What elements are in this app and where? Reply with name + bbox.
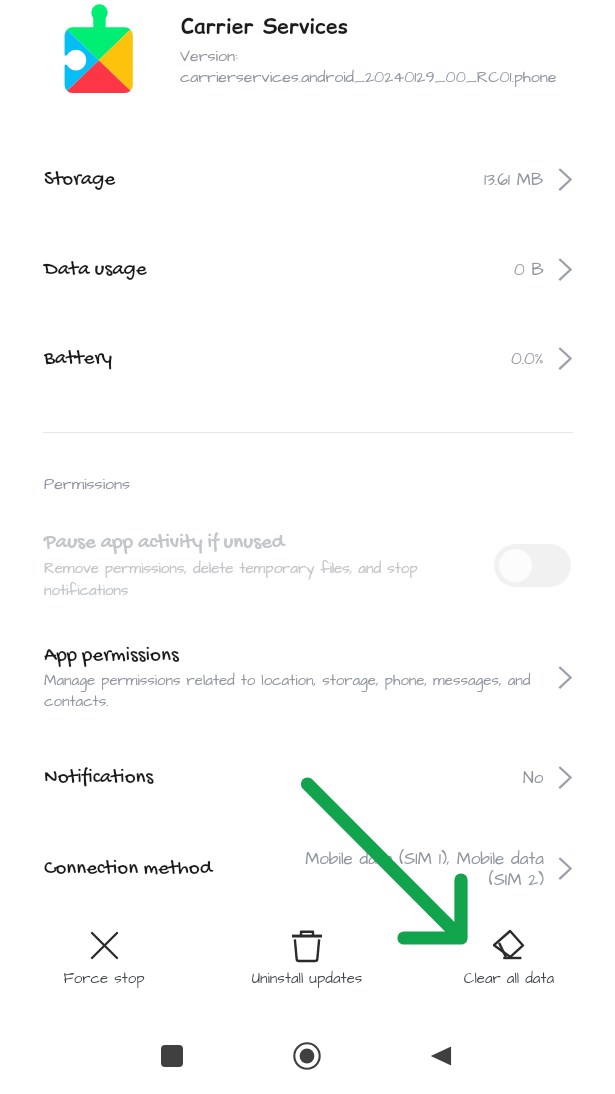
staticText: Connection method — [44, 857, 212, 882]
button[interactable]: App permissions — [0, 640, 615, 716]
staticText: Manage permissions related to location, … — [44, 670, 534, 712]
button[interactable]: Notifications — [0, 734, 615, 822]
button[interactable]: Back — [415, 1030, 467, 1082]
staticText: 13.61 MB — [484, 168, 544, 192]
staticText: Permissions — [44, 473, 131, 495]
button[interactable]: Recent apps — [146, 1030, 198, 1082]
button[interactable]: Connection method — [0, 825, 615, 913]
staticText: Battery — [44, 347, 113, 372]
staticText: Carrier Services — [181, 12, 348, 41]
staticText: Force stop — [4, 968, 204, 989]
button[interactable]: Pause app activity if unused toggle — [494, 544, 571, 587]
staticText: Notifications — [44, 766, 154, 791]
staticText: No — [523, 766, 544, 790]
button[interactable]: Battery — [0, 315, 615, 403]
staticText: Uninstall updates — [207, 968, 407, 989]
staticText: App permissions — [44, 644, 179, 669]
button[interactable]: Pause app activity if unused — [0, 522, 615, 610]
staticText: Data usage — [44, 258, 147, 283]
staticText: 0.0% — [511, 347, 544, 371]
staticText: Mobile data (SIM 1), Mobile data (SIM 2) — [300, 847, 544, 892]
button[interactable]: Clear all data — [440, 920, 578, 990]
staticText: Pause app activity if unused — [44, 531, 285, 556]
button[interactable]: Home — [281, 1030, 333, 1082]
button[interactable]: Force stop — [35, 920, 173, 990]
button[interactable]: Data usage — [0, 226, 615, 314]
staticText: Remove permissions, delete temporary fil… — [44, 558, 419, 601]
staticText: Version: carrierservices.android_2024012… — [180, 45, 557, 88]
button[interactable]: Uninstall updates — [238, 920, 376, 990]
staticText: 0 B — [514, 258, 544, 282]
staticText: Storage — [44, 168, 116, 193]
button[interactable]: Storage — [0, 136, 615, 224]
staticText: Clear all data — [409, 968, 609, 989]
